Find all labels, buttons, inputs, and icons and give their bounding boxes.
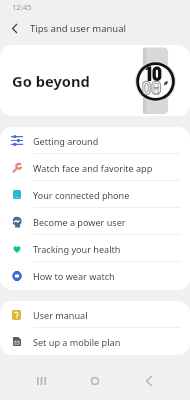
staticText: Become a power user	[33, 216, 126, 228]
button[interactable]: Getting around	[0, 127, 190, 154]
button[interactable]: How to wear watch	[0, 262, 190, 289]
button[interactable]: Home	[81, 367, 109, 395]
button[interactable]: User manual	[0, 301, 190, 328]
button[interactable]: Watch face and favorite app	[0, 154, 190, 181]
staticText: Watch face and favorite app	[33, 162, 153, 174]
button[interactable]: Tracking your health	[0, 235, 190, 262]
button[interactable]: Recent apps	[27, 367, 55, 395]
button[interactable]: Go beyond	[0, 45, 190, 116]
button[interactable]: Navigate up	[4, 16, 24, 40]
staticText: Set up a mobile plan	[33, 336, 121, 348]
button[interactable]: Set up a mobile plan	[0, 328, 190, 355]
button[interactable]: Back	[135, 367, 163, 395]
staticText: User manual	[33, 309, 88, 321]
button[interactable]: Become a power user	[0, 208, 190, 235]
staticText: Your connected phone	[33, 189, 130, 201]
staticText: 12:45	[12, 2, 32, 12]
button[interactable]: Your connected phone	[0, 181, 190, 208]
staticText: Go beyond	[12, 71, 90, 91]
staticText: How to wear watch	[33, 270, 115, 282]
staticText: Tips and user manual	[30, 22, 127, 35]
staticText: Getting around	[33, 135, 99, 147]
staticText: Tracking your health	[33, 243, 121, 255]
